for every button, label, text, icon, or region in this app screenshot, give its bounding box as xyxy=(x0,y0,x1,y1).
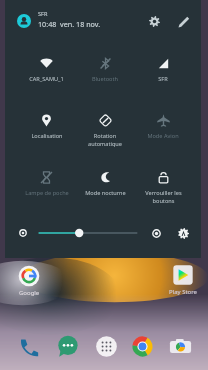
button[interactable]: Bluetooth xyxy=(76,35,134,92)
button[interactable]: Rotation automatique xyxy=(76,92,134,149)
button[interactable]: SFR xyxy=(134,35,192,92)
staticText: 10:48 ven. 18 nov. xyxy=(38,19,101,29)
staticText: SFR xyxy=(38,10,48,18)
button[interactable]: Edit xyxy=(175,13,192,30)
button[interactable]: Camera xyxy=(169,335,192,358)
button[interactable]: Auto brightness xyxy=(175,225,191,241)
staticText: CAR_SAMU_1 xyxy=(29,75,64,83)
button[interactable]: Raise brightness xyxy=(149,226,163,240)
button[interactable]: Localisation xyxy=(17,92,76,149)
button[interactable]: Account xyxy=(17,14,31,28)
button[interactable]: Phone xyxy=(17,335,40,358)
button[interactable]: Verrouiller les boutons xyxy=(134,149,192,206)
staticText: Bluetooth xyxy=(92,75,118,83)
button[interactable]: Lampe de poche xyxy=(17,149,76,206)
staticText: Rotation automatique xyxy=(88,132,122,147)
button[interactable]: Mode nocturne xyxy=(76,149,134,206)
staticText: Mode Avion xyxy=(147,132,179,140)
staticText: Verrouiller les boutons xyxy=(145,189,182,204)
button[interactable]: Play Store xyxy=(169,264,197,296)
button[interactable]: All apps xyxy=(95,335,118,358)
button[interactable]: Chrome xyxy=(131,335,154,358)
button[interactable]: Mode Avion xyxy=(134,92,192,149)
staticText: Play Store xyxy=(169,288,197,296)
staticText: Lampe de poche xyxy=(25,189,69,197)
staticText: SFR xyxy=(158,75,168,83)
button[interactable]: Google xyxy=(18,265,40,297)
staticText: Localisation xyxy=(31,132,63,140)
button[interactable]: Lower brightness xyxy=(16,226,30,240)
staticText: Google xyxy=(19,289,40,297)
staticText: Mode nocturne xyxy=(85,189,126,197)
button[interactable]: Brightness slider xyxy=(37,226,139,240)
button[interactable]: Messages xyxy=(56,335,79,358)
button[interactable]: Settings xyxy=(146,13,163,30)
button[interactable]: CAR_SAMU_1 xyxy=(17,35,76,92)
